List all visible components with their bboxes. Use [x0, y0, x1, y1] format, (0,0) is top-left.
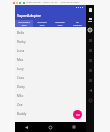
button[interactable]: Max [15, 55, 86, 64]
button[interactable]: ADOPTABLE PETS [15, 20, 33, 27]
button[interactable]: Emulator control [86, 45, 94, 55]
staticText: Max [17, 58, 24, 62]
staticText: Zoe [17, 103, 23, 107]
button[interactable]: Bella [15, 28, 86, 37]
button[interactable]: Add pet [73, 110, 82, 119]
button[interactable]: FAVORITE PETS [51, 20, 69, 27]
staticText: Bella [17, 31, 25, 35]
button[interactable]: Emulator control [86, 55, 94, 65]
staticText: Rocky [17, 40, 26, 44]
button[interactable]: Back [15, 122, 38, 132]
button[interactable]: Rocky [15, 37, 86, 46]
staticText: MY PROFILE [73, 21, 82, 27]
staticText: Milo [17, 94, 24, 98]
button[interactable]: Milo [15, 91, 86, 100]
staticText: Daisy [17, 85, 25, 89]
button[interactable]: Emulator control [86, 5, 94, 15]
button[interactable]: MY PROFILE [69, 20, 86, 27]
button[interactable]: Coco [15, 73, 86, 82]
button[interactable]: Daisy [15, 82, 86, 91]
button[interactable]: Emulator control [86, 85, 94, 95]
button[interactable]: Recents [62, 122, 86, 132]
button[interactable]: Emulator control [86, 15, 94, 25]
button[interactable]: Emulator control [86, 95, 94, 105]
button[interactable]: Buddy [15, 109, 86, 118]
staticText: FAVORITE PETS [55, 21, 65, 27]
button[interactable]: Lucy [15, 64, 86, 73]
staticText: Lucy [17, 67, 24, 71]
staticText: SuperAdopter · Pixel 6 API 33 · Android … [26, 1, 80, 4]
button[interactable]: Luna [15, 46, 86, 55]
button[interactable]: Emulator control [86, 35, 94, 45]
staticText: Luna [17, 49, 25, 53]
staticText: SuperAdopter [17, 13, 42, 18]
staticText: Buddy [17, 112, 27, 116]
button[interactable]: Emulator control [86, 65, 94, 75]
button[interactable]: ADOPTED PETS [33, 20, 51, 27]
button[interactable]: Emulator control [86, 25, 94, 35]
staticText: ADOPTABLE PETS [18, 21, 30, 27]
button[interactable]: Home [38, 122, 62, 132]
button[interactable]: Emulator control [86, 75, 94, 85]
staticText: Coco [17, 76, 25, 80]
button[interactable]: Zoe [15, 100, 86, 109]
staticText: ADOPTED PETS [37, 21, 47, 27]
